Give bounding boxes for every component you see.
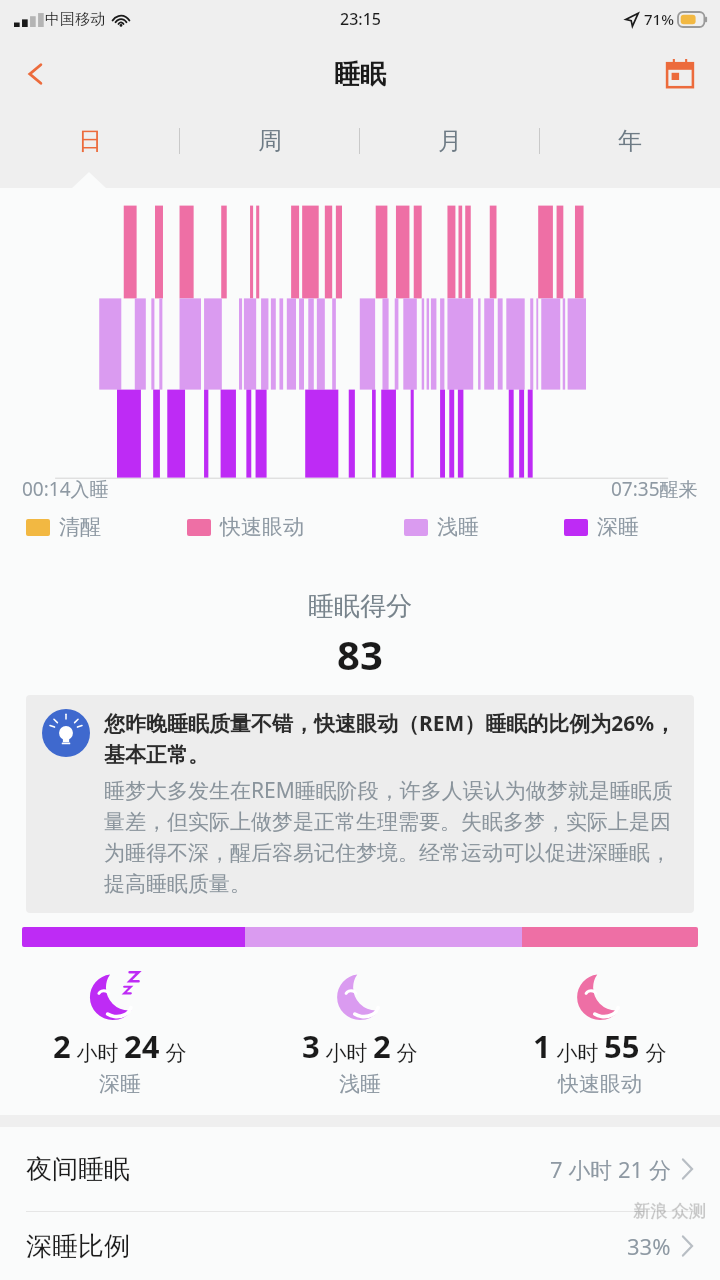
staticText: 7 小时 21 分 [550,1154,671,1184]
staticText: 深睡 [597,514,639,540]
staticText: 深睡比例 [26,1230,130,1263]
staticText: 日 [78,126,102,156]
staticText: 睡眠 [334,58,386,91]
staticText: 小时 [71,1038,124,1067]
staticText: 71% [644,9,674,29]
button[interactable]: 月 [360,110,540,172]
staticText: 分 [391,1038,418,1067]
staticText: 2 [53,1025,71,1067]
staticText: 浅睡 [339,1071,381,1097]
staticText: 中国移动 [45,10,105,29]
button[interactable]: 浅睡 [404,514,564,540]
staticText: 3 [302,1025,320,1067]
staticText: 深睡 [99,1071,141,1097]
button[interactable]: 年 [540,110,720,172]
staticText: 分 [640,1038,667,1067]
staticText: 周 [258,126,282,156]
staticText: 睡眠得分 [308,590,412,623]
staticText: 快速眼动 [220,514,304,540]
button[interactable]: 深睡比例 [0,1212,720,1280]
button[interactable]: 周 [180,110,360,172]
staticText: 23:15 [340,8,381,30]
staticText: 清醒 [59,514,101,540]
staticText: 月 [438,126,462,156]
staticText: 1 [533,1025,551,1067]
button[interactable]: 您昨晚睡眠质量不错，快速眼动（REM）睡眠的比例为26%，基本正常。 [26,695,694,913]
staticText: 分 [160,1038,187,1067]
staticText: 新浪 众测 [633,1199,706,1222]
button[interactable]: 1 [480,967,720,1097]
staticText: 您昨晚睡眠质量不错，快速眼动（REM）睡眠的比例为26%，基本正常。 [104,709,678,768]
button[interactable]: 夜间睡眠 [0,1127,720,1211]
staticText: 夜间睡眠 [26,1153,130,1186]
staticText: 00:14入睡 [22,476,109,502]
staticText: 浅睡 [437,514,479,540]
staticText: 睡梦大多发生在REM睡眠阶段，许多人误认为做梦就是睡眠质量差，但实际上做梦是正常… [104,776,678,897]
button[interactable]: 日 [0,110,180,172]
button[interactable]: 3 [240,967,480,1097]
button[interactable]: 深睡 [564,514,700,540]
staticText: 24 [124,1025,160,1067]
button[interactable]: Calendar [656,50,704,98]
staticText: 快速眼动 [558,1071,642,1097]
button[interactable]: 2 [0,967,240,1097]
button[interactable]: 清醒 [26,514,187,540]
staticText: 55 [604,1025,640,1067]
button[interactable]: Back [10,48,62,100]
staticText: 07:35醒来 [611,476,698,502]
staticText: 小时 [551,1038,604,1067]
button[interactable]: 快速眼动 [187,514,404,540]
staticText: 年 [618,126,642,156]
staticText: 33% [627,1231,671,1261]
staticText: 小时 [320,1038,373,1067]
staticText: 2 [373,1025,391,1067]
staticText: 83 [337,627,383,681]
